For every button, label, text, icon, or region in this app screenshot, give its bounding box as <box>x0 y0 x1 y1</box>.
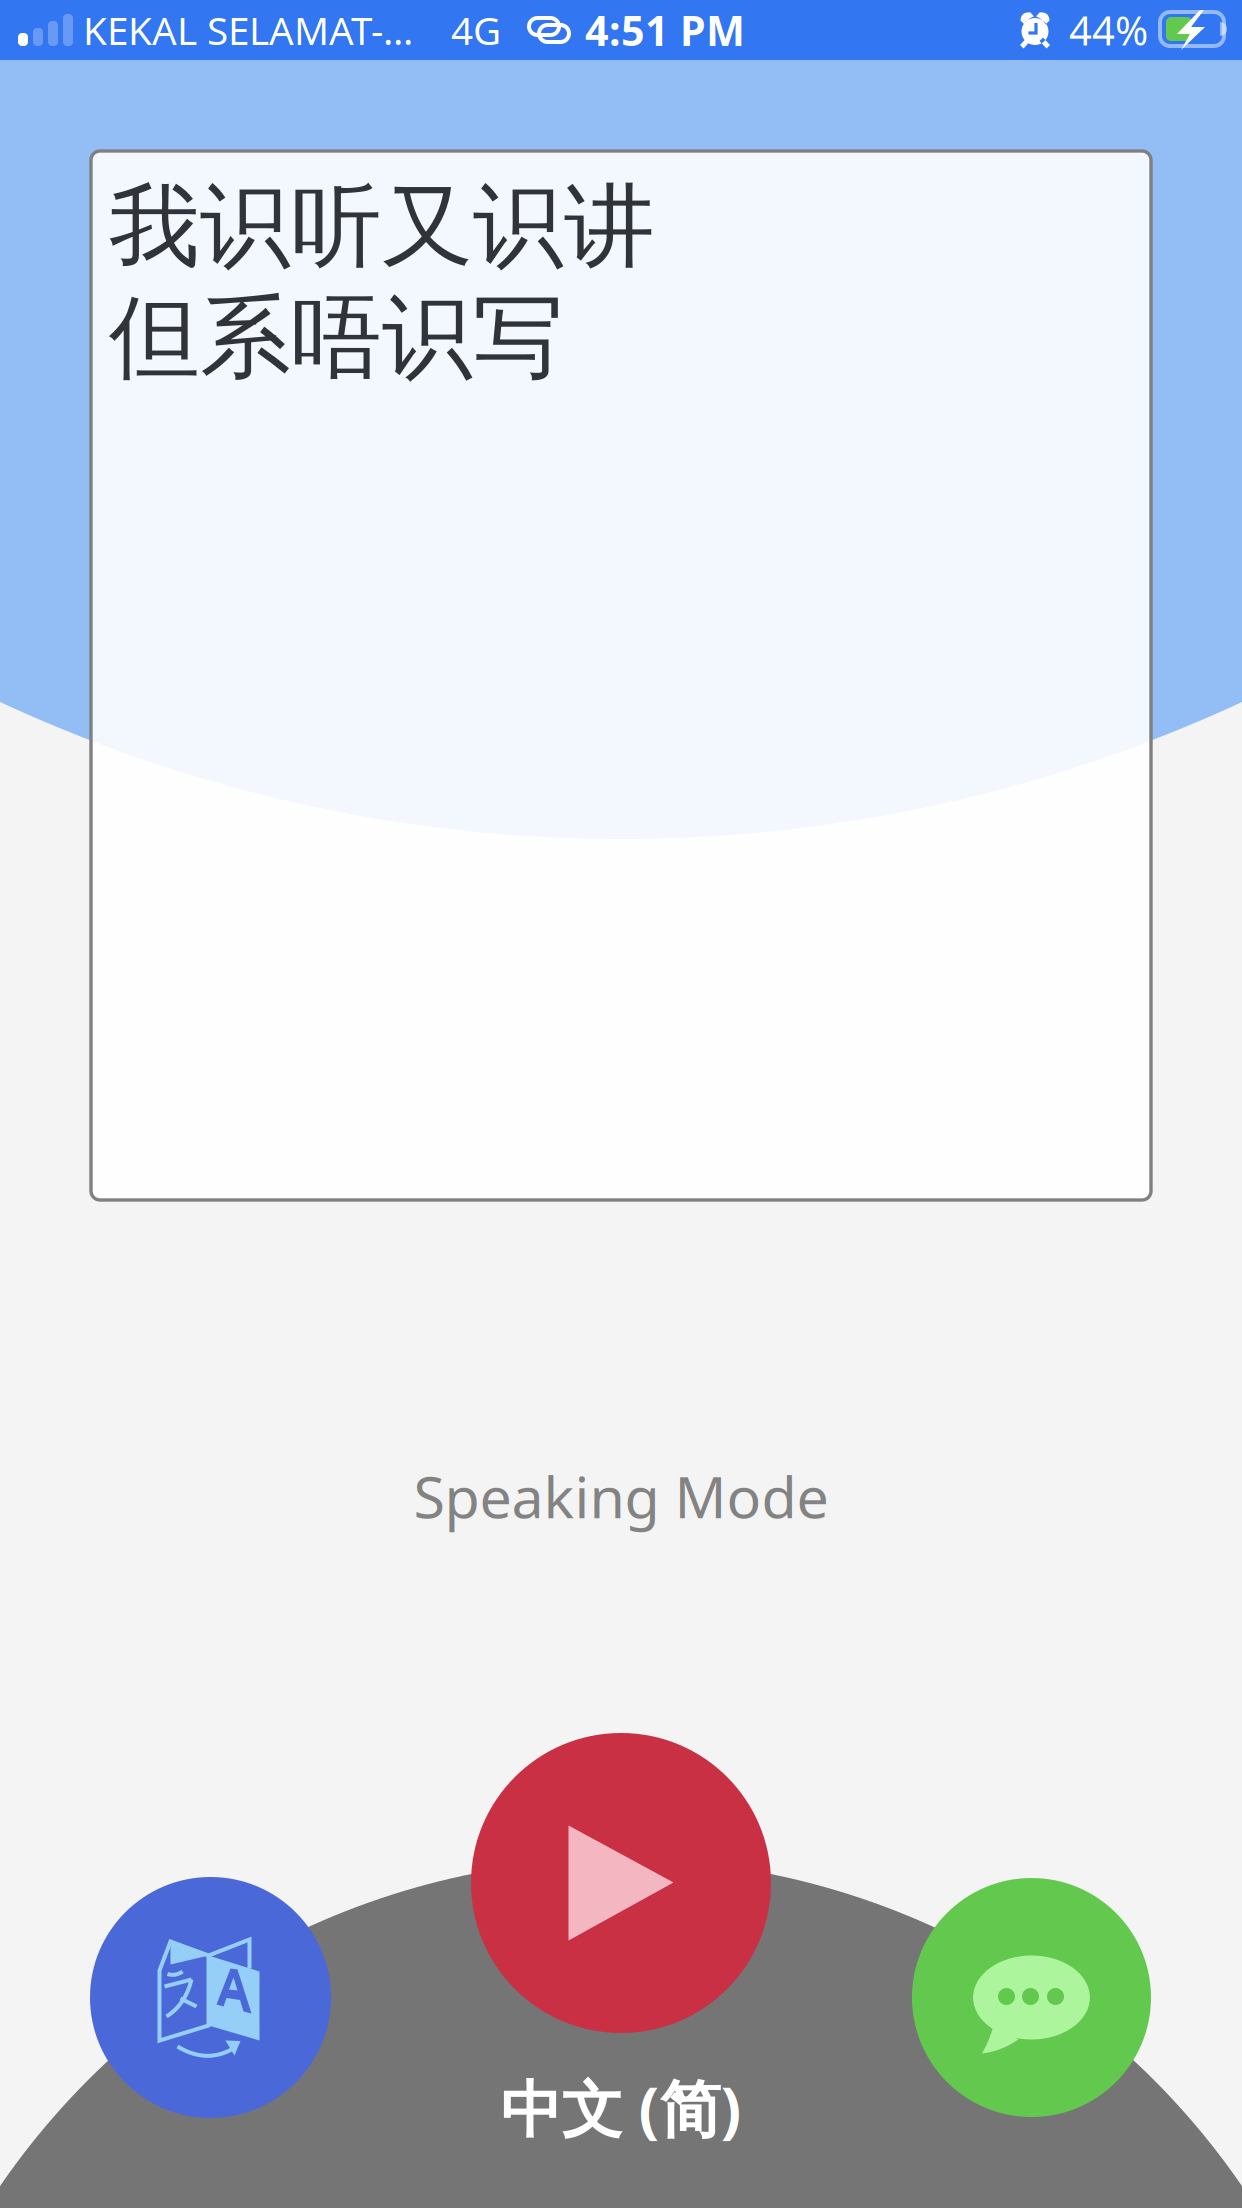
button[interactable]: Play <box>471 1733 771 2033</box>
staticText: KEKAL SELAMAT-... <box>83 4 413 56</box>
button[interactable]: 我识听又识讲 <box>91 151 1151 1200</box>
button[interactable]: Conversation <box>912 1878 1151 2117</box>
staticText: 但系唔识写 <box>109 282 564 394</box>
staticText: 4:51 PM <box>585 3 745 57</box>
staticText: 中文 (简) <box>500 2067 741 2149</box>
staticText: 我识听又识讲 <box>109 171 655 282</box>
staticText: Speaking Mode <box>413 1458 828 1534</box>
button[interactable]: 中文 (简) <box>471 2068 771 2148</box>
staticText: 44% <box>1069 3 1148 56</box>
staticText: 4G <box>451 4 501 56</box>
button[interactable]: Translate <box>90 1877 331 2118</box>
